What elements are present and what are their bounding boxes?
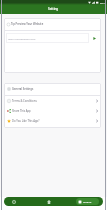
staticText: Setting	[83, 200, 92, 203]
button[interactable]: Do You Like This App?	[4, 116, 101, 126]
staticText: 9:41	[100, 1, 105, 4]
staticText: Setting	[48, 7, 59, 11]
staticText: General Settings	[12, 87, 34, 91]
staticText: http://yourdomain.com	[8, 37, 36, 40]
staticText: Do You Like This App?	[12, 119, 40, 123]
staticText: Share This App	[12, 109, 31, 113]
button[interactable]: Dashboard	[9, 197, 18, 206]
button[interactable]: Home	[44, 197, 53, 206]
staticText: Terms & Conditions	[12, 99, 37, 103]
button[interactable]: Share This App	[4, 106, 101, 116]
staticText: Tip Preview Your Website	[11, 22, 44, 26]
button[interactable]: Preview website	[89, 33, 99, 43]
button[interactable]: Setting	[76, 198, 99, 205]
button[interactable]: Terms & Conditions	[4, 96, 101, 106]
